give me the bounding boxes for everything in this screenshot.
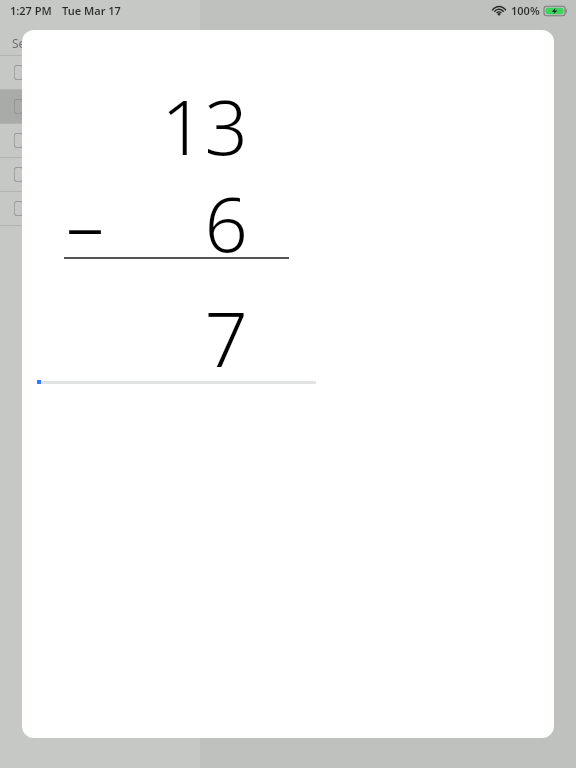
staticText: 1:27 PM (10, 3, 52, 18)
button[interactable] (0, 90, 200, 123)
staticText: 6 (48, 171, 248, 275)
staticText: Tue Mar 17 (62, 3, 121, 18)
staticText: – (66, 171, 104, 275)
staticText: Settings (12, 35, 58, 51)
button[interactable]: Answer input (37, 360, 316, 384)
button[interactable] (0, 158, 200, 191)
staticText: 13 (48, 74, 248, 178)
staticText: 100% (511, 3, 540, 18)
button[interactable] (0, 124, 200, 157)
button[interactable] (0, 56, 200, 89)
staticText: 7 (48, 286, 248, 390)
button[interactable] (0, 192, 200, 225)
